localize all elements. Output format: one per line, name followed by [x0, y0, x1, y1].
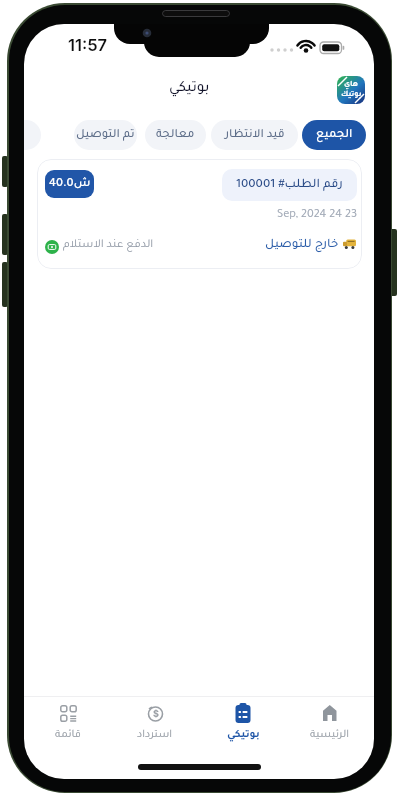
button[interactable]: بوتيكي — [203, 700, 283, 748]
staticText: قيد الانتظار — [225, 129, 285, 142]
button[interactable]: $ — [115, 700, 195, 748]
button[interactable]: الجميع — [302, 120, 366, 150]
staticText: بوتيك — [341, 91, 362, 99]
staticText: الدفع عند الاستلام — [63, 239, 154, 251]
staticText: خارج للتوصيل — [265, 239, 339, 252]
staticText: ش40.0 — [49, 178, 91, 191]
button[interactable]: قائمة — [28, 700, 108, 748]
staticText: هاي — [344, 81, 358, 89]
staticText: تم التوصيل — [76, 129, 135, 142]
button[interactable]: هاي — [337, 76, 365, 104]
staticText: الرئيسية — [310, 730, 350, 742]
button[interactable]: معالجة — [145, 120, 206, 150]
staticText: الجميع — [316, 129, 353, 142]
staticText: استرداد — [137, 730, 173, 742]
staticText: بوتيكي — [169, 81, 210, 96]
button[interactable]: الرئيسية — [290, 700, 370, 748]
staticText: قائمة — [55, 730, 82, 742]
button[interactable]: تم التوصيل — [74, 120, 137, 150]
button[interactable] — [24, 120, 41, 150]
staticText: بوتيكي — [227, 730, 260, 742]
staticText: $ — [153, 708, 159, 719]
staticText: Sep, 2024 24 23 — [277, 209, 357, 221]
staticText: 11:57 — [68, 35, 108, 55]
staticText: رقم الطلب# 100001 — [236, 179, 343, 192]
staticText: معالجة — [156, 129, 195, 142]
button[interactable]: رقم الطلب# 100001 — [37, 159, 362, 269]
button[interactable]: قيد الانتظار — [211, 120, 298, 150]
